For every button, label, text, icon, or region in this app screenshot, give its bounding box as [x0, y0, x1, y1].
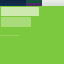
button[interactable]: Menu: [0, 0, 26, 6]
button[interactable]: Profile: [42, 0, 64, 6]
